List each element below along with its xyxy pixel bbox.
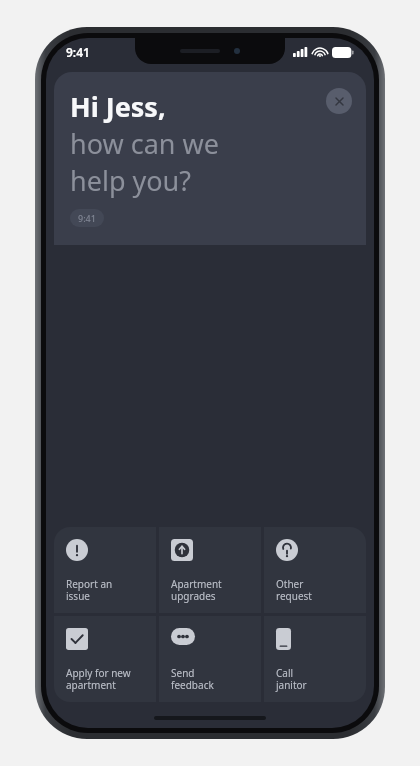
staticText: Report an issue — [66, 577, 113, 603]
button[interactable]: Send feedback — [159, 616, 261, 702]
staticText: how can we — [70, 125, 219, 162]
staticText: 9:41 — [78, 212, 96, 224]
staticText: Hi Jess, — [70, 88, 166, 125]
button[interactable]: Close — [326, 88, 352, 114]
button[interactable]: Other request — [264, 527, 366, 613]
staticText: Apartment upgrades — [171, 577, 222, 603]
staticText: help you? — [70, 162, 192, 199]
staticText: 9:41 — [66, 44, 90, 60]
staticText: Call janitor — [276, 666, 307, 692]
staticText: Apply for new apartment — [66, 666, 131, 692]
button[interactable]: Call janitor — [264, 616, 366, 702]
button[interactable]: Apply for new apartment — [54, 616, 156, 702]
staticText: Other request — [276, 577, 312, 603]
button[interactable]: Apartment upgrades — [159, 527, 261, 613]
button[interactable]: Report an issue — [54, 527, 156, 613]
staticText: Send feedback — [171, 666, 214, 692]
